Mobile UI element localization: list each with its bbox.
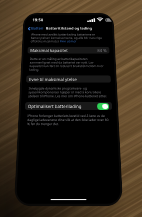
staticText: Optimalisert batterilading	[28, 103, 82, 109]
staticText: iPhone forlenger batteriets levetid ved …	[27, 114, 110, 126]
button[interactable]: Optimalisert batterilading på	[97, 103, 109, 110]
button[interactable]: Optimalisert batterilading	[25, 102, 112, 110]
staticText: 19:50	[32, 17, 43, 22]
staticText: Batteri	[31, 26, 44, 31]
staticText: 84 %	[97, 47, 107, 53]
button[interactable]: Tilbake til Batteri	[24, 24, 47, 33]
staticText: Innebygde dynamiske programvare- og syst…	[28, 87, 109, 98]
button[interactable]: Maksimal kapasitet	[27, 47, 110, 54]
staticText: Maksimal kapasitet	[30, 47, 68, 53]
button[interactable]: Evne til maksimal ytelse	[26, 75, 111, 83]
staticText: Dette er en måling av batterikapasiteten…	[29, 57, 108, 72]
staticText: iPhone med avslått batterilading batteri…	[30, 33, 106, 43]
staticText: Batteritilstand og lading	[46, 26, 92, 31]
staticText: Evne til maksimal ytelse	[29, 76, 78, 82]
